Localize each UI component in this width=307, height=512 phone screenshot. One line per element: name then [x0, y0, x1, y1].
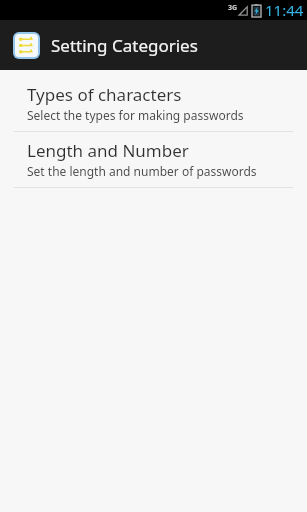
button[interactable]: Types of characters [0, 76, 307, 131]
other: App icon [13, 32, 40, 59]
staticText: Set the length and number of passwords [27, 163, 257, 179]
button[interactable]: App icon [0, 20, 307, 70]
button[interactable]: Length and Number [0, 132, 307, 187]
staticText: Length and Number [27, 139, 189, 162]
staticText: Select the types for making passwords [27, 107, 244, 123]
staticText: 11:44 [265, 0, 304, 20]
staticText: Types of characters [27, 83, 182, 106]
staticText: 3G [228, 3, 238, 13]
staticText: Setting Categories [51, 34, 198, 57]
